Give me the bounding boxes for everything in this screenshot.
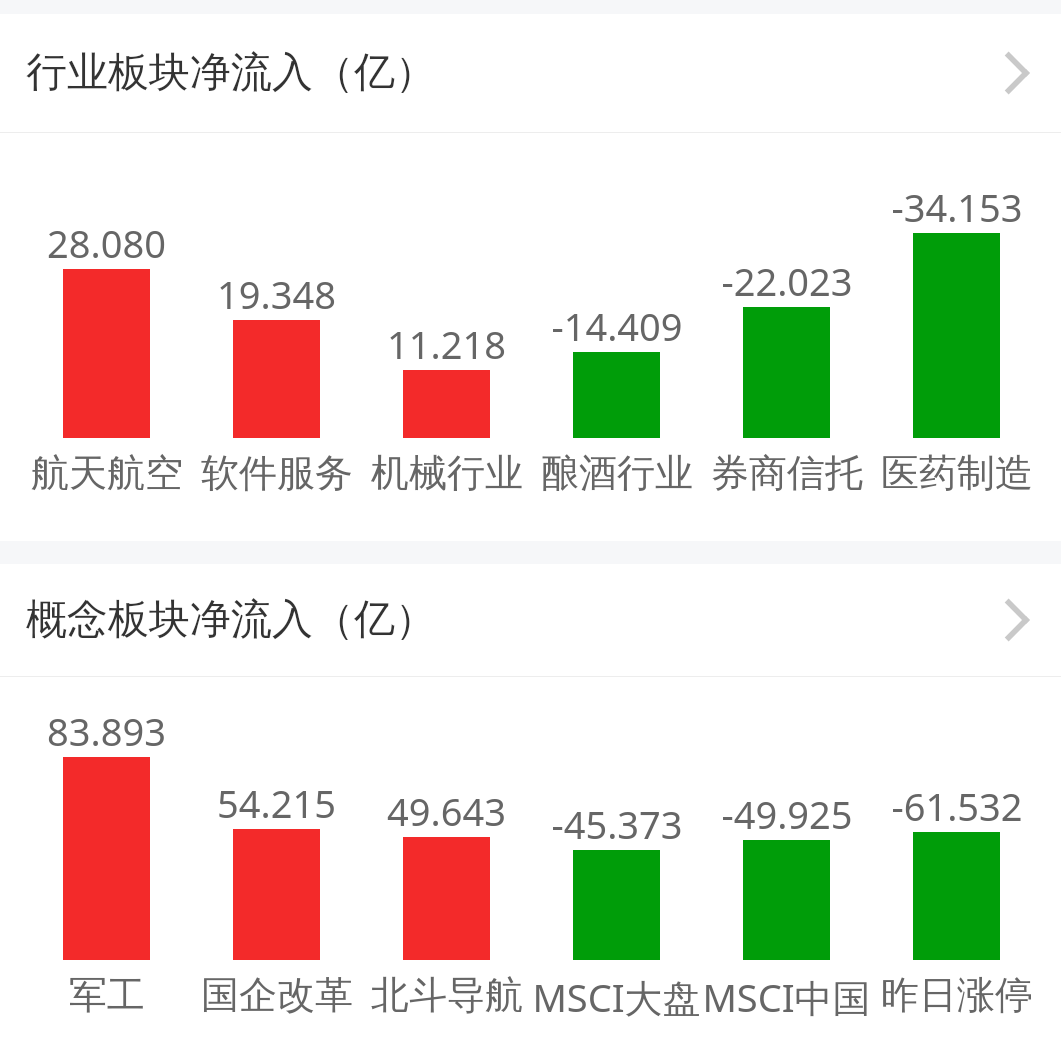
staticText: 83.893: [47, 709, 166, 753]
staticText: 券商信托: [711, 449, 863, 497]
staticText: 医药制造: [881, 449, 1033, 497]
other: More: [995, 51, 1039, 95]
staticText: 国企改革: [201, 971, 353, 1019]
button[interactable]: 行业板块净流入（亿）: [0, 14, 1061, 132]
staticText: -34.153: [891, 185, 1023, 229]
staticText: 49.643: [387, 785, 506, 833]
staticText: 机械行业: [371, 449, 523, 497]
staticText: 北斗导航: [371, 971, 523, 1019]
staticText: 行业板块净流入（亿）: [26, 47, 436, 99]
staticText: -14.409: [551, 300, 683, 348]
staticText: 酿酒行业: [541, 449, 693, 497]
staticText: 概念板块净流入（亿）: [26, 594, 436, 646]
staticText: -45.373: [551, 798, 683, 846]
staticText: -61.532: [891, 780, 1023, 828]
staticText: -49.925: [721, 788, 853, 836]
staticText: 54.215: [217, 777, 336, 825]
staticText: 软件服务: [201, 449, 353, 497]
staticText: MSCI大盘: [532, 971, 701, 1019]
staticText: MSCI中国: [702, 971, 871, 1019]
staticText: 军工: [69, 971, 145, 1019]
staticText: -22.023: [721, 255, 853, 303]
button[interactable]: 概念板块净流入（亿）: [0, 564, 1061, 676]
staticText: 航天航空: [31, 449, 183, 497]
other: More: [995, 598, 1039, 642]
staticText: 19.348: [217, 268, 336, 316]
staticText: 昨日涨停: [881, 971, 1033, 1019]
staticText: 28.080: [47, 217, 166, 265]
staticText: 11.218: [387, 318, 506, 366]
